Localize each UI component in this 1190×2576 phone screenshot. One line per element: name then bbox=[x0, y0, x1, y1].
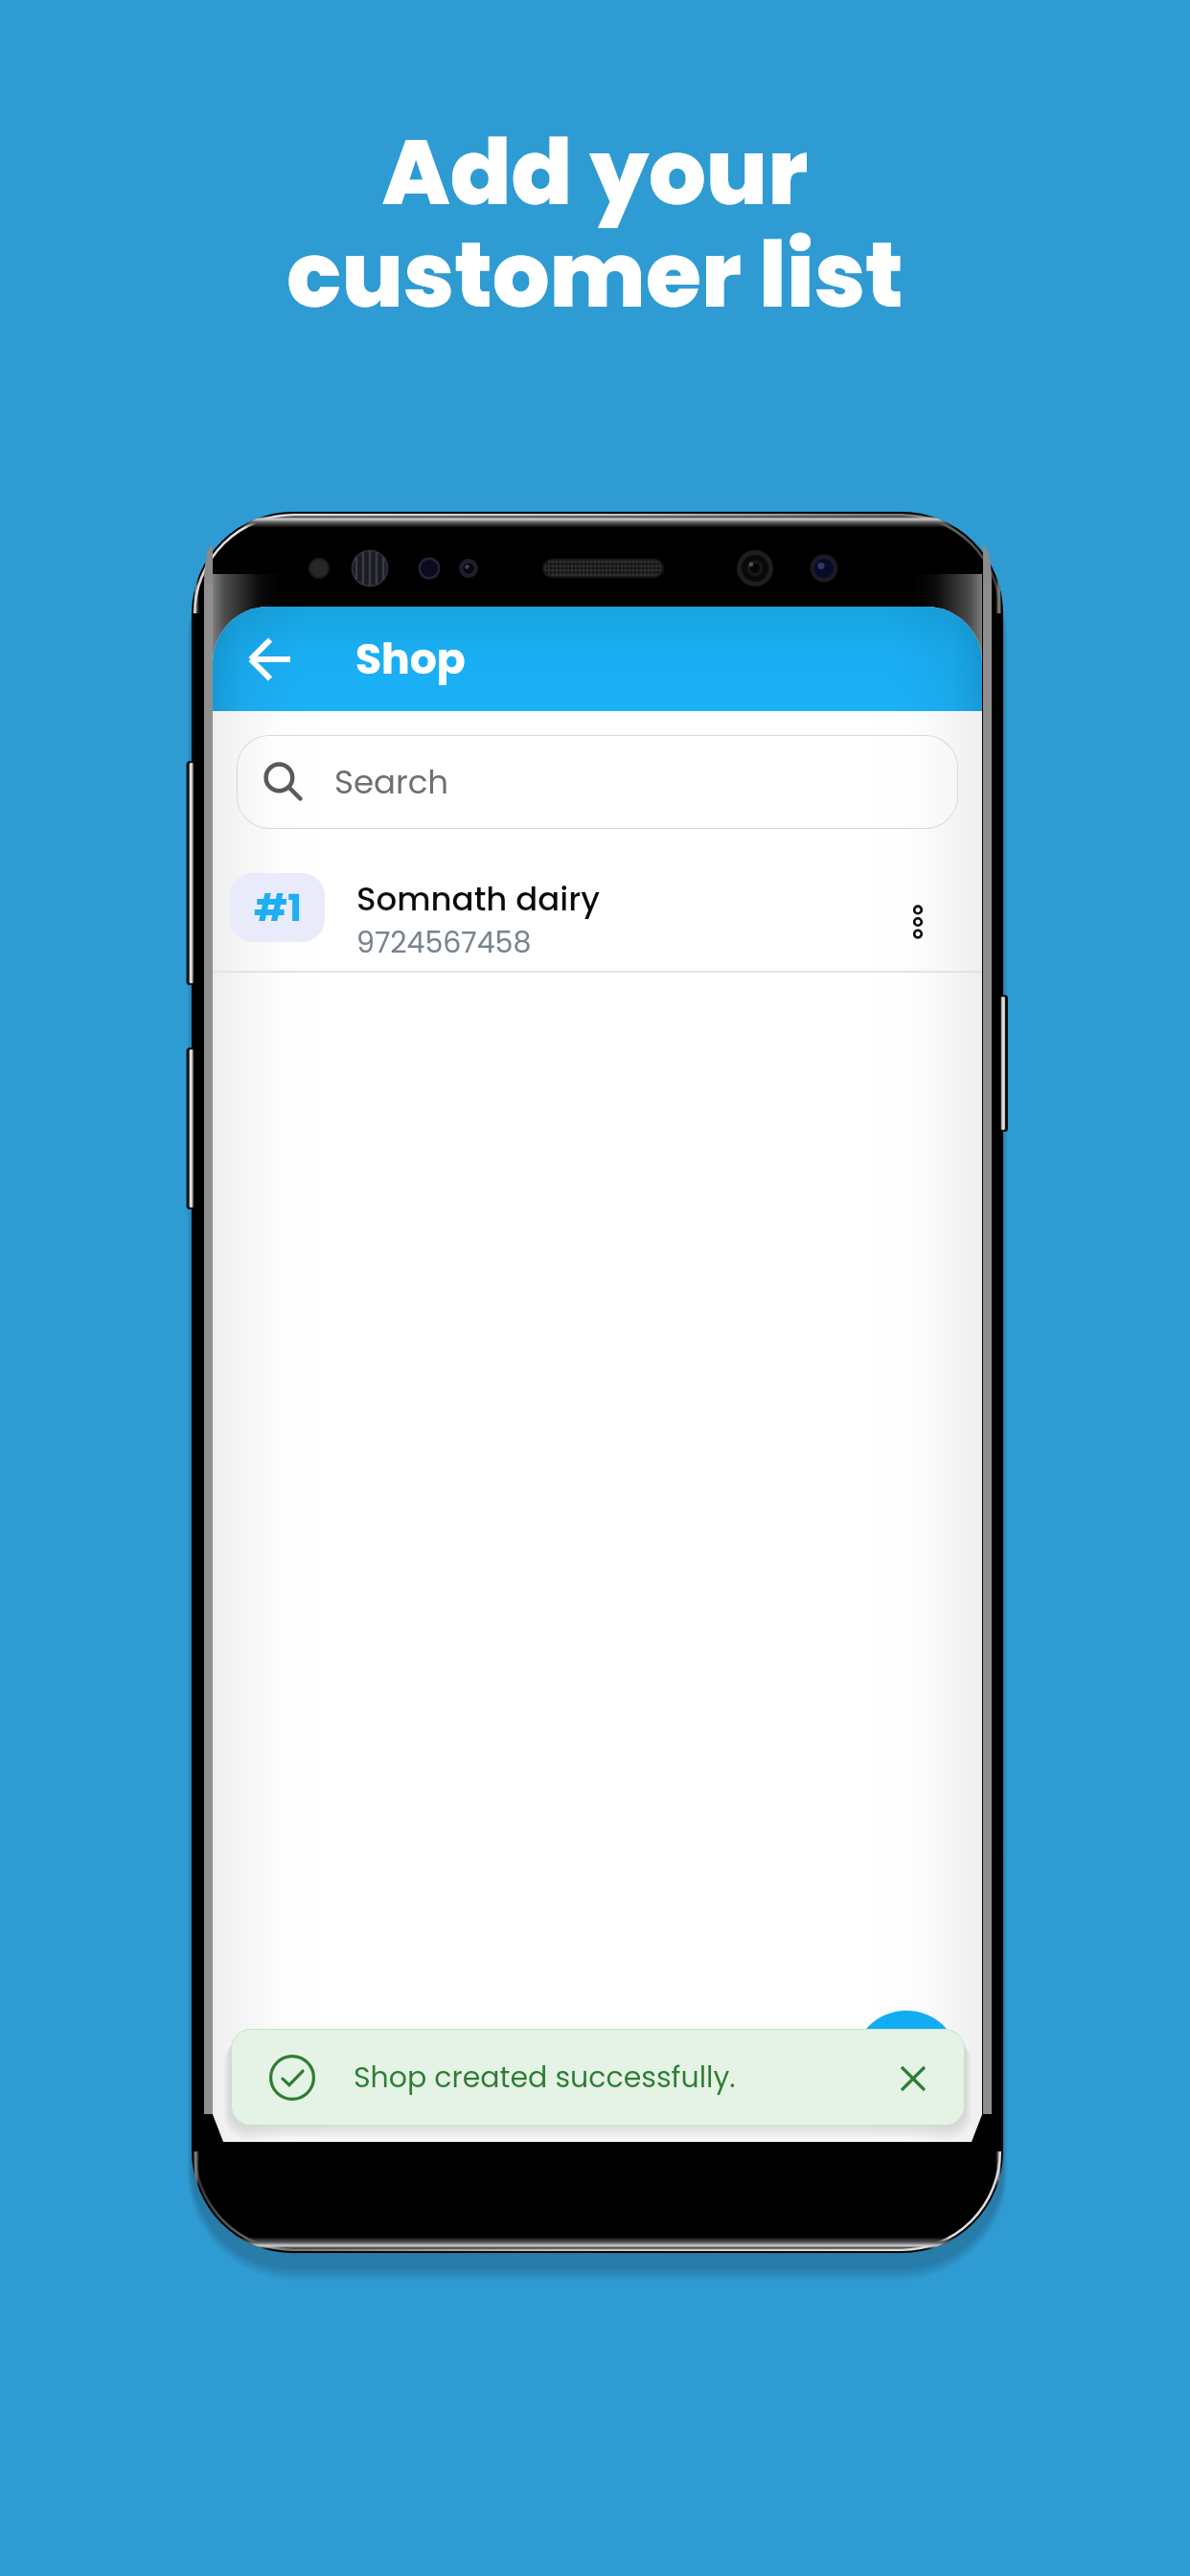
staticText: Somnath dairy bbox=[356, 876, 601, 922]
staticText: Shop bbox=[355, 630, 466, 689]
button[interactable]: Dismiss bbox=[884, 2050, 942, 2107]
staticText: 9724567458 bbox=[356, 923, 532, 963]
staticText: Shop created successfully. bbox=[354, 2058, 736, 2098]
button[interactable]: More options bbox=[881, 885, 955, 959]
button[interactable]: Back bbox=[230, 607, 310, 711]
button[interactable]: Success bbox=[231, 2029, 965, 2126]
staticText: Search bbox=[334, 759, 449, 805]
button[interactable]: #1 bbox=[213, 829, 982, 971]
button[interactable]: Success bbox=[269, 2055, 315, 2101]
staticText: Add your customer list bbox=[286, 109, 904, 338]
button[interactable]: Add shop bbox=[853, 2011, 960, 2118]
staticText: #1 bbox=[254, 882, 302, 934]
button[interactable]: Search bbox=[237, 735, 958, 829]
